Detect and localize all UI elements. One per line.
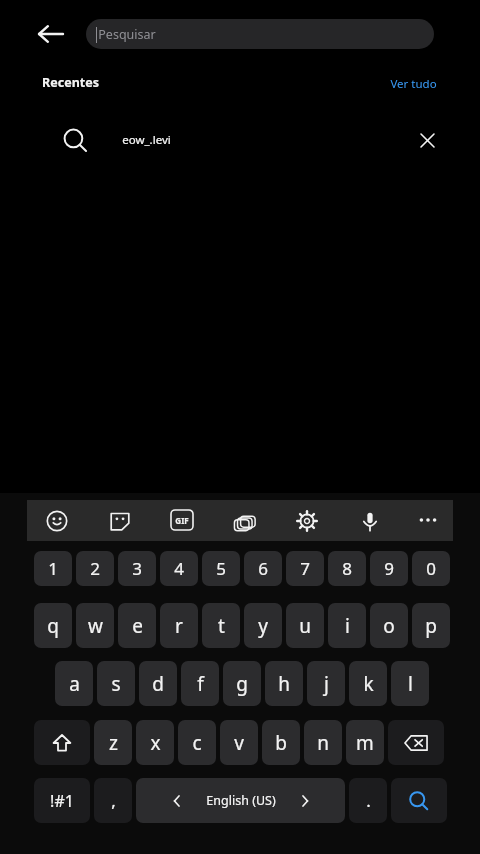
button[interactable]: 9 xyxy=(370,551,408,586)
staticText: 8 xyxy=(342,557,352,580)
button[interactable]: Remove xyxy=(410,123,444,157)
button[interactable]: q xyxy=(34,603,72,648)
button[interactable]: p xyxy=(412,603,450,648)
button[interactable]: m xyxy=(346,720,384,765)
button[interactable]: w xyxy=(76,603,114,648)
staticText: 6 xyxy=(258,557,268,580)
staticText: o xyxy=(383,613,395,639)
button[interactable]: 6 xyxy=(244,551,282,586)
button[interactable]: e xyxy=(118,603,156,648)
staticText: j xyxy=(324,671,329,697)
staticText: v xyxy=(234,730,244,756)
staticText: a xyxy=(69,671,80,697)
button[interactable]: 5 xyxy=(202,551,240,586)
staticText: f xyxy=(197,671,204,697)
staticText: 4 xyxy=(174,557,184,580)
button[interactable]: Backspace xyxy=(388,720,444,765)
staticText: 0 xyxy=(426,557,436,580)
staticText: p xyxy=(425,613,437,639)
button[interactable]: i xyxy=(328,603,366,648)
button[interactable]: 8 xyxy=(328,551,366,586)
button[interactable]: !#1 xyxy=(34,778,90,823)
button[interactable]: More options xyxy=(414,508,442,532)
staticText: e xyxy=(132,613,143,639)
button[interactable]: c xyxy=(178,720,216,765)
button[interactable]: k xyxy=(349,661,387,706)
button[interactable]: a xyxy=(55,661,93,706)
button[interactable]: Stickers xyxy=(106,507,134,535)
staticText: n xyxy=(317,730,329,756)
staticText: k xyxy=(363,671,374,697)
button[interactable]: f xyxy=(181,661,219,706)
button[interactable]: 0 xyxy=(412,551,450,586)
button[interactable]: Pesquisar xyxy=(86,19,434,49)
button[interactable]: 2 xyxy=(76,551,114,586)
staticText: h xyxy=(278,671,290,697)
button[interactable]: Emoji xyxy=(43,507,71,535)
staticText: l xyxy=(408,671,413,697)
button[interactable]: h xyxy=(265,661,303,706)
button[interactable]: z xyxy=(94,720,132,765)
button[interactable]: t xyxy=(202,603,240,648)
staticText: Ver tudo xyxy=(390,76,437,92)
staticText: 5 xyxy=(216,557,226,580)
button[interactable]: n xyxy=(304,720,342,765)
staticText: y xyxy=(258,613,268,639)
button[interactable]: r xyxy=(160,603,198,648)
button[interactable]: g xyxy=(223,661,261,706)
staticText: c xyxy=(192,730,202,756)
staticText: z xyxy=(109,730,118,756)
button[interactable]: Settings xyxy=(293,507,321,535)
button[interactable]: Voice input xyxy=(356,507,384,535)
button[interactable]: 1 xyxy=(34,551,72,586)
staticText: Recentes xyxy=(42,74,99,91)
button[interactable]: Keyboard layout xyxy=(231,507,259,535)
button[interactable]: l xyxy=(391,661,429,706)
staticText: r xyxy=(175,613,183,639)
button[interactable]: b xyxy=(262,720,300,765)
button[interactable]: eow_.levi xyxy=(0,118,480,162)
button[interactable]: 3 xyxy=(118,551,156,586)
button[interactable]: , xyxy=(94,778,132,823)
staticText: 7 xyxy=(300,557,310,580)
button[interactable]: j xyxy=(307,661,345,706)
staticText: d xyxy=(152,671,164,697)
button[interactable]: v xyxy=(220,720,258,765)
button[interactable]: 7 xyxy=(286,551,324,586)
button[interactable]: x xyxy=(136,720,174,765)
button[interactable]: GIF xyxy=(171,510,193,530)
staticText: x xyxy=(150,730,161,756)
button[interactable]: Back xyxy=(30,14,70,54)
staticText: , xyxy=(111,789,116,812)
staticText: s xyxy=(111,671,121,697)
button[interactable]: Shift xyxy=(34,720,90,765)
staticText: b xyxy=(275,730,287,756)
button[interactable]: Ver tudo xyxy=(390,76,437,92)
staticText: English (US) xyxy=(206,792,276,809)
staticText: m xyxy=(356,730,374,756)
staticText: eow_.levi xyxy=(122,132,171,148)
staticText: 3 xyxy=(132,557,142,580)
staticText: u xyxy=(299,613,311,639)
staticText: t xyxy=(218,613,225,639)
staticText: 9 xyxy=(384,557,394,580)
staticText: q xyxy=(47,613,59,639)
staticText: Pesquisar xyxy=(98,26,156,43)
staticText: w xyxy=(88,613,103,639)
staticText: . xyxy=(366,789,371,812)
button[interactable]: . xyxy=(349,778,387,823)
button[interactable]: s xyxy=(97,661,135,706)
button[interactable]: 4 xyxy=(160,551,198,586)
staticText: 2 xyxy=(90,557,100,580)
staticText: GIF xyxy=(175,515,189,526)
staticText: i xyxy=(345,613,350,639)
button[interactable]: English (US) xyxy=(136,778,345,823)
button[interactable]: y xyxy=(244,603,282,648)
button[interactable]: d xyxy=(139,661,177,706)
staticText: g xyxy=(236,671,248,697)
button[interactable]: o xyxy=(370,603,408,648)
button[interactable]: u xyxy=(286,603,324,648)
staticText: !#1 xyxy=(50,790,74,812)
staticText: 1 xyxy=(48,557,58,580)
button[interactable]: Search xyxy=(391,778,447,823)
